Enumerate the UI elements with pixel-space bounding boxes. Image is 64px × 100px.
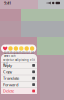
staticText: Lorem ipsum dolor sit amet con — [4, 51, 34, 58]
button[interactable]: Reply — [1, 62, 37, 68]
staticText: Forward — [3, 82, 18, 87]
staticText: sectetur adipiscing elit sed — [3, 58, 35, 65]
button[interactable]: Translate — [1, 75, 37, 81]
button[interactable]: Haha — [19, 44, 24, 52]
staticText: Copy — [3, 69, 12, 74]
button[interactable]: Love — [2, 44, 8, 52]
button[interactable]: Copy — [1, 69, 37, 75]
button[interactable]: Question mark — [29, 44, 35, 52]
staticText: 9:41 — [4, 0, 11, 6]
button[interactable]: Forward — [1, 82, 37, 88]
button[interactable]: Thumbs up — [8, 44, 13, 52]
staticText: Translate — [3, 75, 19, 81]
button[interactable]: Exclamation — [24, 44, 29, 52]
staticText: Delete — [3, 88, 14, 94]
staticText: Reply — [3, 63, 12, 68]
button[interactable]: Delete — [1, 88, 37, 94]
button[interactable]: Thumbs down — [13, 44, 19, 52]
